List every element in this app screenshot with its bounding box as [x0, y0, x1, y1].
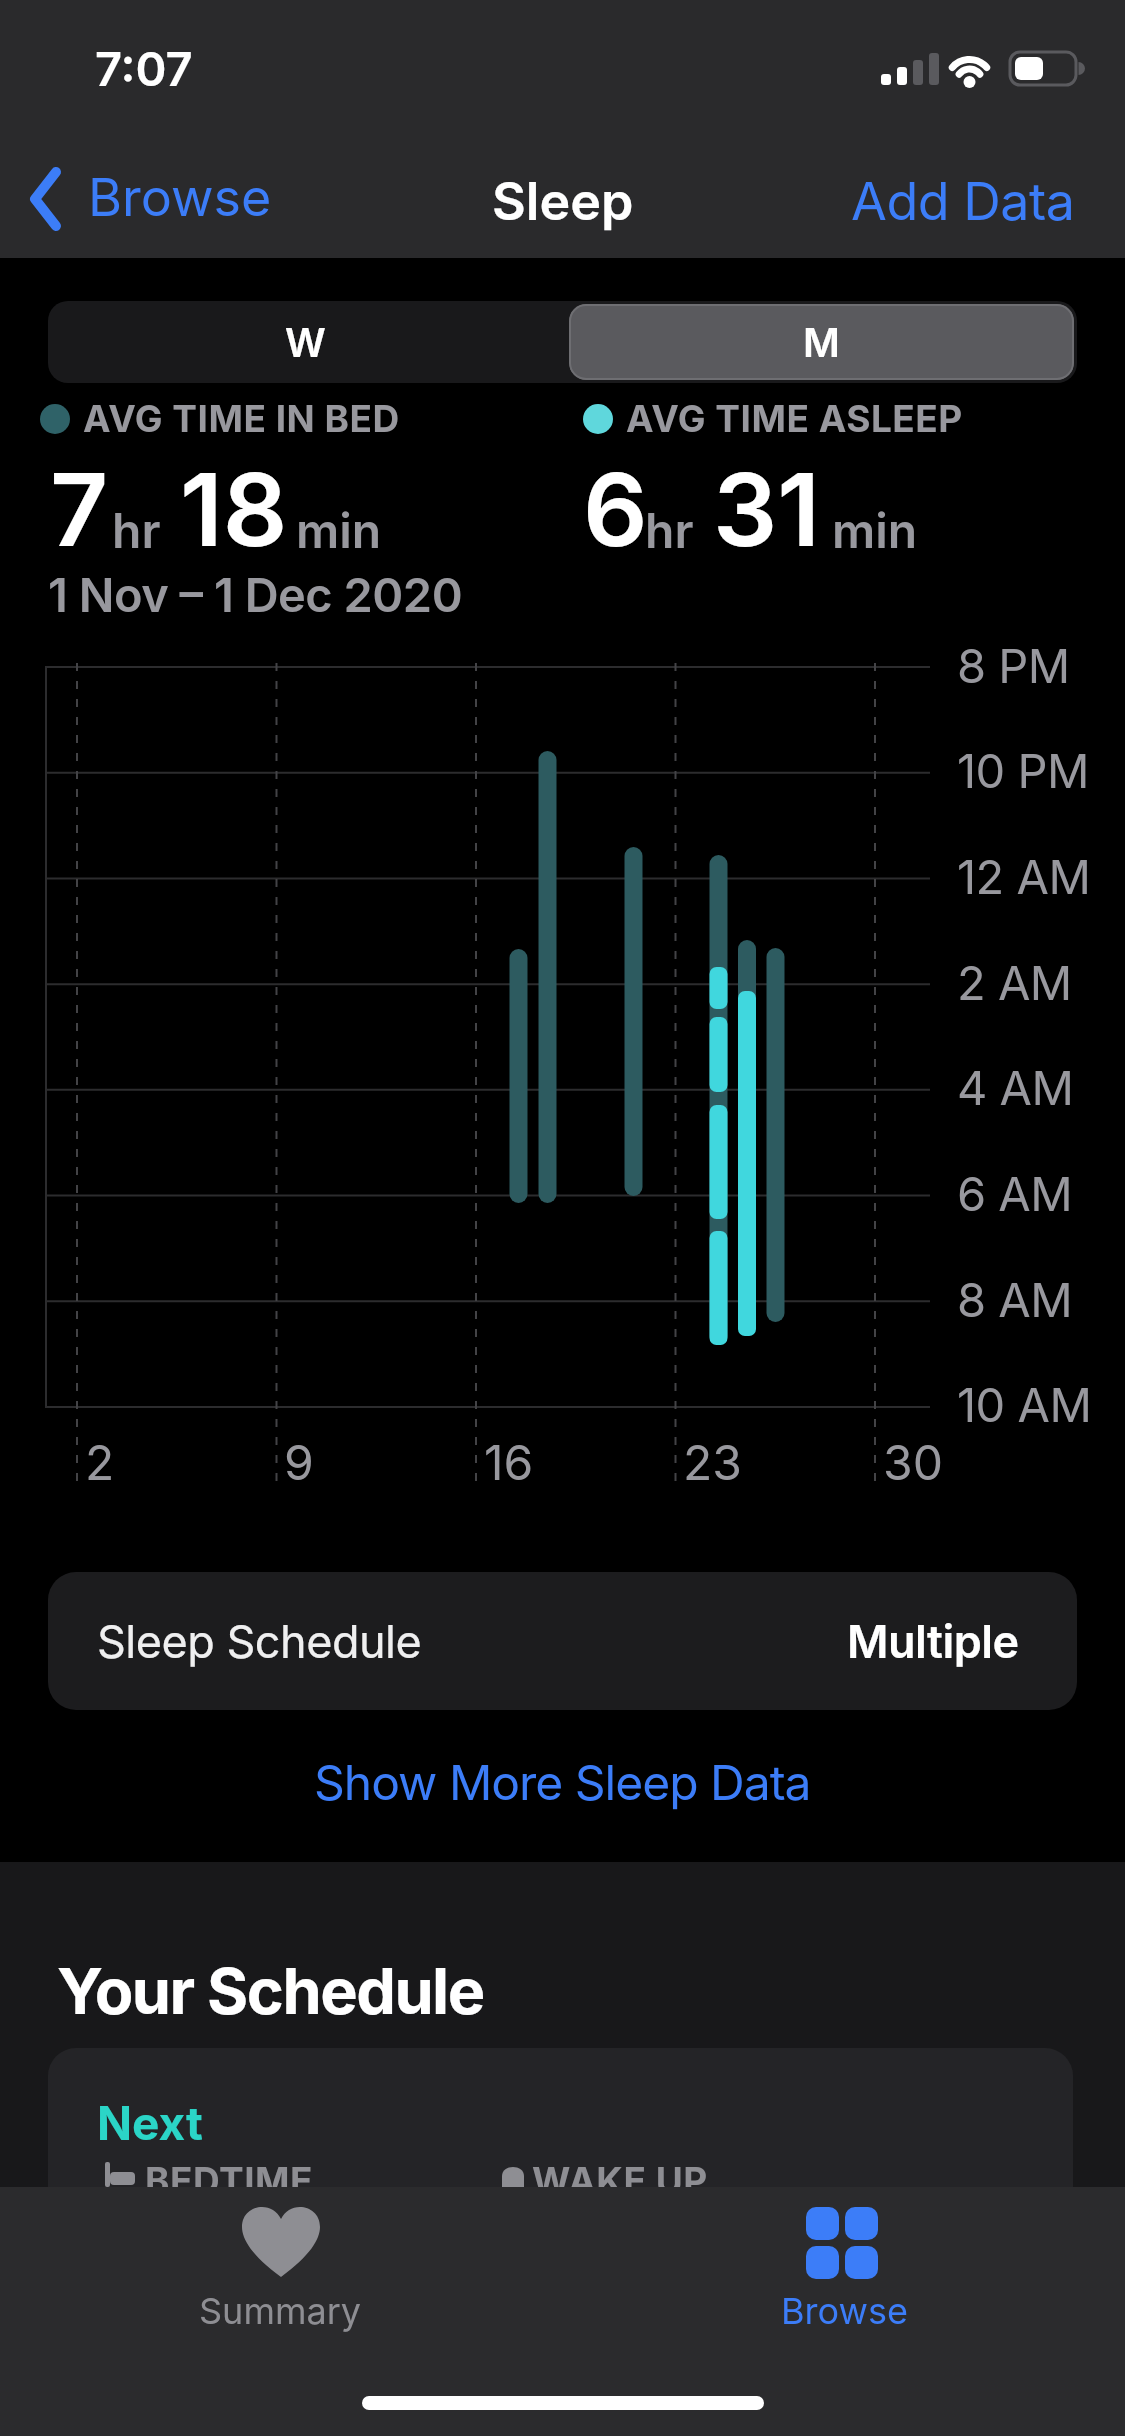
staticText: WAKE UP: [532, 2158, 708, 2203]
staticText: 7: [50, 448, 109, 570]
staticText: min: [296, 501, 382, 559]
staticText: hr: [645, 501, 694, 559]
staticText: 2 AM: [957, 954, 1072, 1011]
staticText: hr: [112, 501, 161, 559]
staticText: 8 AM: [957, 1271, 1073, 1328]
staticText: Sleep Schedule: [97, 1614, 422, 1668]
staticText: AVG TIME IN BED: [83, 396, 400, 441]
button[interactable]: Browse: [20, 150, 270, 240]
staticText: Sleep: [492, 170, 634, 233]
staticText: AVG TIME ASLEEP: [626, 396, 963, 441]
staticText: 9: [284, 1433, 314, 1491]
staticText: Browse: [781, 2289, 908, 2333]
staticText: Your Schedule: [57, 1953, 484, 2029]
button[interactable]: Browse: [714, 2197, 974, 2347]
staticText: 12 AM: [957, 848, 1091, 905]
staticText: 16: [484, 1433, 534, 1491]
staticText: 30: [883, 1433, 943, 1491]
staticText: min: [832, 501, 918, 559]
staticText: 2: [85, 1433, 115, 1491]
staticText: Summary: [199, 2289, 362, 2333]
button[interactable]: Add Data: [851, 170, 1075, 233]
staticText: 10 PM: [957, 742, 1089, 799]
staticText: Next: [97, 2095, 203, 2151]
staticText: 18: [180, 448, 288, 570]
staticText: 10 AM: [957, 1376, 1092, 1433]
staticText: 7:07: [95, 40, 193, 97]
staticText: 8 PM: [957, 637, 1070, 694]
staticText: 31: [713, 448, 820, 570]
staticText: Multiple: [847, 1614, 1019, 1668]
button[interactable]: M: [569, 304, 1074, 380]
button[interactable]: Show More Sleep Data: [314, 1753, 811, 1811]
button[interactable]: Summary: [150, 2197, 410, 2347]
staticText: 6: [583, 448, 648, 570]
staticText: 1 Nov – 1 Dec 2020: [48, 566, 463, 623]
staticText: 6 AM: [957, 1165, 1073, 1222]
staticText: 23: [683, 1433, 742, 1491]
button[interactable]: Next: [48, 2048, 1073, 2436]
staticText: W: [285, 318, 326, 366]
button[interactable]: Sleep Schedule: [48, 1572, 1077, 1710]
button[interactable]: W: [48, 301, 562, 383]
staticText: Browse: [88, 166, 272, 229]
staticText: M: [803, 318, 840, 366]
staticText: 4 AM: [957, 1059, 1074, 1116]
staticText: BEDTIME: [145, 2158, 314, 2203]
